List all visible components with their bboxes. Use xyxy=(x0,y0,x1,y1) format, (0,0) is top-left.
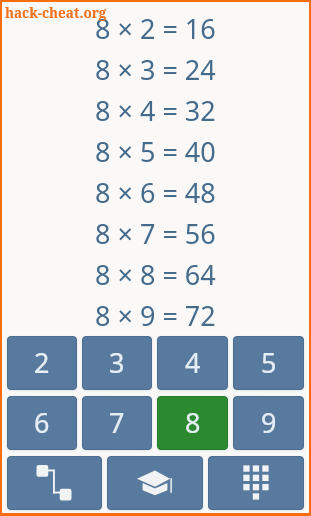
button[interactable]: 9 xyxy=(233,396,304,450)
staticText: 8 × 3 = 24 xyxy=(95,51,216,88)
staticText: 7 xyxy=(109,404,125,441)
button[interactable]: 6 xyxy=(7,396,77,450)
staticText: 8 × 2 = 16 xyxy=(95,10,216,47)
staticText: hack-cheat.org xyxy=(5,4,107,22)
staticText: 4 xyxy=(185,344,201,381)
button[interactable]: 8 xyxy=(157,396,228,450)
button[interactable]: 2 xyxy=(7,336,77,390)
staticText: 8 × 5 = 40 xyxy=(95,133,216,170)
button[interactable]: 7 xyxy=(82,396,152,450)
staticText: 6 xyxy=(34,404,50,441)
button[interactable]: Learn xyxy=(107,456,203,510)
staticText: 8 × 9 = 72 xyxy=(95,297,216,334)
staticText: 8 × 4 = 32 xyxy=(95,92,216,129)
button[interactable]: Tree xyxy=(7,456,102,510)
button[interactable]: 5 xyxy=(233,336,304,390)
button[interactable]: Keypad xyxy=(208,456,304,510)
staticText: 2 xyxy=(34,344,50,381)
staticText: 8 × 7 = 56 xyxy=(95,215,216,252)
staticText: 8 xyxy=(185,404,201,441)
staticText: 5 xyxy=(261,344,277,381)
staticText: 8 × 6 = 48 xyxy=(95,174,216,211)
button[interactable]: 4 xyxy=(157,336,228,390)
staticText: 8 × 8 = 64 xyxy=(95,256,216,293)
staticText: 3 xyxy=(109,344,125,381)
button[interactable]: 3 xyxy=(82,336,152,390)
staticText: 9 xyxy=(261,404,277,441)
